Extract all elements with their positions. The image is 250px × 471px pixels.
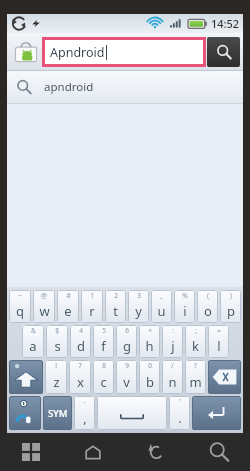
button[interactable]: 4 bbox=[70, 325, 91, 358]
staticText: o bbox=[204, 302, 212, 320]
button[interactable]: Backspace bbox=[208, 360, 241, 394]
button[interactable]: : bbox=[162, 325, 183, 358]
staticText: ! bbox=[55, 361, 57, 370]
staticText: y bbox=[135, 302, 142, 320]
button[interactable]: = bbox=[208, 325, 229, 358]
button[interactable]: # bbox=[57, 290, 79, 323]
staticText: a bbox=[29, 337, 37, 355]
staticText: 4 bbox=[79, 326, 83, 335]
staticText: ; bbox=[195, 326, 197, 335]
button[interactable]: 0 bbox=[139, 360, 160, 394]
staticText: u bbox=[157, 302, 166, 320]
button[interactable]: @ bbox=[33, 290, 55, 323]
button[interactable]: 9 bbox=[116, 360, 137, 394]
button[interactable]: ? bbox=[185, 360, 206, 394]
staticText: 9 bbox=[125, 361, 129, 370]
staticText: w bbox=[39, 302, 50, 320]
button[interactable]: Back bbox=[124, 433, 187, 471]
staticText: : bbox=[172, 326, 174, 335]
staticText: ) bbox=[230, 291, 232, 300]
button[interactable]: Apndroid bbox=[45, 40, 203, 64]
staticText: 0 bbox=[148, 361, 152, 370]
staticText: _ bbox=[160, 291, 163, 300]
staticText: 2 bbox=[114, 291, 118, 300]
staticText: 1 bbox=[90, 291, 94, 300]
button[interactable]: + bbox=[139, 325, 160, 358]
button[interactable]: Shift bbox=[9, 360, 43, 394]
staticText: l bbox=[217, 337, 221, 355]
button[interactable]: Recent apps bbox=[0, 433, 62, 471]
button[interactable]: $ bbox=[46, 325, 68, 358]
button[interactable]: 5 bbox=[93, 325, 114, 358]
staticText: = bbox=[217, 326, 221, 335]
staticText: b bbox=[146, 373, 154, 391]
staticText: h bbox=[145, 337, 154, 355]
button[interactable]: 7 bbox=[69, 360, 91, 394]
staticText: @ bbox=[41, 291, 47, 300]
staticText: - bbox=[83, 397, 86, 406]
staticText: % bbox=[182, 291, 188, 300]
staticText: $ bbox=[55, 326, 59, 335]
button[interactable]: 6 bbox=[116, 325, 137, 358]
staticText: g bbox=[123, 337, 131, 355]
button[interactable]: & bbox=[22, 325, 44, 358]
staticText: + bbox=[148, 326, 152, 335]
button[interactable]: Input method bbox=[9, 396, 41, 430]
staticText: , bbox=[83, 409, 87, 427]
button[interactable]: Space bbox=[97, 396, 167, 430]
staticText: f bbox=[101, 337, 106, 355]
staticText: apndroid bbox=[44, 79, 94, 95]
button[interactable]: Home bbox=[62, 433, 124, 471]
staticText: k bbox=[192, 337, 199, 355]
staticText: n bbox=[168, 373, 177, 391]
staticText: / bbox=[171, 361, 174, 370]
button[interactable]: / bbox=[162, 360, 183, 394]
staticText: t bbox=[113, 302, 118, 320]
button[interactable]: % bbox=[174, 290, 195, 323]
staticText: # bbox=[66, 291, 71, 300]
staticText: 6 bbox=[125, 326, 129, 335]
button[interactable]: SYM bbox=[43, 396, 72, 430]
staticText: . bbox=[178, 409, 182, 427]
button[interactable]: apndroid bbox=[7, 71, 243, 103]
button[interactable]: ! bbox=[45, 360, 67, 394]
staticText: ' bbox=[179, 397, 181, 406]
staticText: q bbox=[16, 302, 24, 320]
staticText: Apndroid bbox=[50, 44, 105, 61]
button[interactable]: Play Store bbox=[11, 37, 41, 67]
staticText: 3 bbox=[137, 291, 141, 300]
staticText: 14:52 bbox=[211, 16, 240, 31]
staticText: ~ bbox=[18, 291, 22, 300]
staticText: & bbox=[31, 326, 36, 335]
staticText: x bbox=[77, 373, 84, 391]
staticText: SYM bbox=[48, 407, 68, 420]
staticText: 5 bbox=[102, 326, 106, 335]
button[interactable]: Search bbox=[207, 37, 240, 67]
staticText: c bbox=[100, 373, 107, 391]
staticText: ? bbox=[194, 361, 197, 370]
staticText: d bbox=[77, 337, 85, 355]
staticText: i bbox=[183, 302, 187, 320]
button[interactable]: ; bbox=[185, 325, 206, 358]
staticText: 7 bbox=[78, 361, 82, 370]
staticText: s bbox=[54, 337, 61, 355]
button[interactable]: ' bbox=[169, 396, 190, 430]
button[interactable]: 1 bbox=[81, 290, 103, 323]
button[interactable]: _ bbox=[151, 290, 172, 323]
staticText: m bbox=[189, 373, 202, 391]
button[interactable]: ~ bbox=[9, 290, 31, 323]
button[interactable]: 3 bbox=[128, 290, 149, 323]
button[interactable]: 2 bbox=[105, 290, 126, 323]
staticText: j bbox=[171, 337, 175, 355]
button[interactable]: 8 bbox=[93, 360, 114, 394]
staticText: p bbox=[227, 302, 235, 320]
button[interactable]: ) bbox=[220, 290, 241, 323]
staticText: v bbox=[123, 373, 130, 391]
button[interactable]: Enter bbox=[192, 396, 241, 430]
button[interactable]: ( bbox=[197, 290, 218, 323]
staticText: ( bbox=[207, 291, 209, 300]
button[interactable]: Search bbox=[187, 433, 250, 471]
button[interactable]: - bbox=[74, 396, 95, 430]
staticText: e bbox=[64, 302, 72, 320]
staticText: z bbox=[53, 373, 60, 391]
